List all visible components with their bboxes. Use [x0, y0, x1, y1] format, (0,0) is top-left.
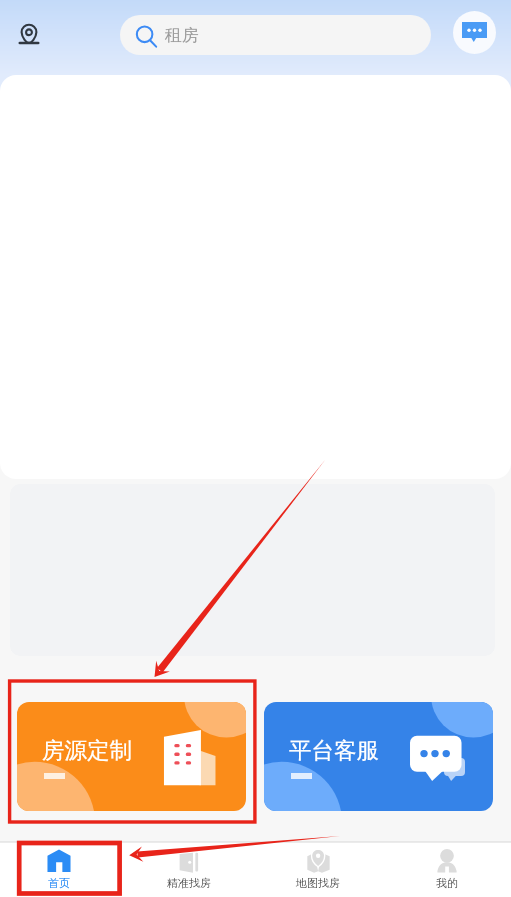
- button[interactable]: 首页: [0, 842, 124, 897]
- staticText: 租房: [165, 25, 199, 46]
- staticText: 我的: [436, 876, 458, 890]
- button[interactable]: 地图找房: [253, 842, 383, 897]
- button[interactable]: 房源定制: [17, 702, 246, 811]
- button[interactable]: 平台客服: [264, 702, 493, 811]
- button[interactable]: Location: [12, 18, 46, 52]
- button[interactable]: 精准找房: [124, 842, 254, 897]
- staticText: 地图找房: [296, 876, 340, 890]
- staticText: 平台客服: [289, 736, 379, 764]
- staticText: 精准找房: [167, 876, 211, 890]
- staticText: 首页: [48, 876, 70, 890]
- button[interactable]: 我的: [382, 842, 511, 897]
- button[interactable]: Messages: [453, 11, 496, 54]
- button[interactable]: 租房: [120, 15, 431, 55]
- staticText: 房源定制: [42, 736, 132, 764]
